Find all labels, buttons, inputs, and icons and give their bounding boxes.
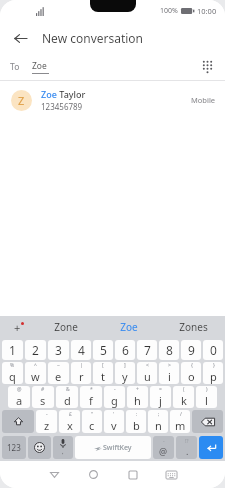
- button[interactable]: 8: [159, 340, 179, 360]
- staticText: f: [89, 393, 93, 408]
- button[interactable]: @: [8, 386, 30, 408]
- button[interactable]: :: [126, 410, 146, 433]
- staticText: y: [122, 369, 128, 384]
- staticText: t: [101, 369, 105, 384]
- staticText: -: [163, 438, 165, 445]
- button[interactable]: Zone: [34, 316, 97, 338]
- button[interactable]: Hide keyboard: [152, 461, 191, 488]
- button[interactable]: More options: [0, 316, 34, 338]
- staticText: 100%: [160, 6, 178, 16]
- button[interactable]: ]: [115, 362, 135, 384]
- button[interactable]: Back: [8, 26, 32, 50]
- staticText: b: [133, 418, 140, 433]
- button[interactable]: To: [0, 54, 225, 80]
- staticText: i: [168, 369, 171, 384]
- button[interactable]: Home: [74, 461, 113, 488]
- button[interactable]: 3: [48, 340, 69, 360]
- staticText: To: [10, 61, 20, 73]
- staticText: v: [111, 418, 117, 433]
- staticText: ^: [34, 362, 37, 369]
- staticText: {: [191, 362, 193, 369]
- staticText: z: [44, 418, 50, 433]
- button[interactable]: Recent apps: [113, 461, 152, 488]
- button[interactable]: ~: [48, 362, 69, 384]
- button[interactable]: ;: [148, 410, 168, 433]
- button[interactable]: Z: [0, 81, 225, 119]
- button[interactable]: 0: [203, 340, 223, 360]
- staticText: s: [40, 393, 46, 408]
- staticText: p: [210, 369, 217, 384]
- button[interactable]: 1: [2, 340, 23, 360]
- button[interactable]: -: [104, 386, 125, 408]
- staticText: Zoe: [120, 320, 138, 334]
- button[interactable]: Numbers: [2, 436, 26, 459]
- button[interactable]: (: [173, 386, 194, 408]
- staticText: Zoe: [32, 60, 47, 72]
- staticText: u: [144, 369, 151, 384]
- button[interactable]: #: [32, 386, 54, 408]
- staticText: 123456789: [41, 101, 83, 112]
- staticText: &: [66, 386, 70, 393]
- button[interactable]: Back: [35, 461, 74, 488]
- button[interactable]: 6: [115, 340, 135, 360]
- button[interactable]: /: [170, 410, 190, 433]
- staticText: *: [90, 386, 93, 393]
- button[interactable]: -: [36, 410, 57, 433]
- staticText: Mobile: [191, 95, 216, 105]
- staticText: 5: [100, 342, 107, 358]
- staticText: 9: [188, 342, 195, 358]
- button[interactable]: *: [80, 386, 102, 408]
- staticText: [: [102, 362, 104, 369]
- staticText: .: [186, 445, 189, 457]
- button[interactable]: {: [181, 362, 201, 384]
- staticText: Zone: [54, 320, 78, 334]
- staticText: ): [206, 386, 208, 393]
- button[interactable]: &: [56, 386, 78, 408]
- button[interactable]: !?: [176, 436, 197, 459]
- button[interactable]: >: [159, 362, 179, 384]
- button[interactable]: =: [150, 386, 171, 408]
- button[interactable]: 4: [71, 340, 91, 360]
- button[interactable]: £: [59, 410, 80, 433]
- staticText: :: [136, 411, 138, 418]
- button[interactable]: Dial pad: [195, 55, 219, 79]
- staticText: g: [111, 393, 118, 408]
- button[interactable]: ': [104, 410, 124, 433]
- staticText: ": [91, 411, 94, 418]
- button[interactable]: <: [137, 362, 157, 384]
- button[interactable]: }: [203, 362, 223, 384]
- staticText: e: [55, 369, 62, 384]
- button[interactable]: Voice input: [53, 436, 73, 459]
- button[interactable]: ): [196, 386, 217, 408]
- button[interactable]: 5: [93, 340, 113, 360]
- button[interactable]: +: [127, 386, 148, 408]
- staticText: x: [67, 418, 73, 433]
- staticText: 6: [122, 342, 129, 358]
- staticText: o: [188, 369, 195, 384]
- button[interactable]: [: [93, 362, 113, 384]
- button[interactable]: Backspace: [192, 410, 223, 433]
- staticText: %: [10, 362, 15, 369]
- button[interactable]: Emoji: [28, 436, 51, 459]
- button[interactable]: 9: [181, 340, 201, 360]
- button[interactable]: ": [82, 410, 102, 433]
- staticText: 3: [55, 342, 62, 358]
- staticText: ~: [57, 362, 60, 369]
- button[interactable]: 2: [25, 340, 46, 360]
- staticText: d: [64, 393, 71, 408]
- button[interactable]: Space: [75, 436, 151, 459]
- button[interactable]: ^: [25, 362, 46, 384]
- staticText: Zoe: [41, 88, 57, 100]
- button[interactable]: Zones: [161, 316, 225, 338]
- staticText: @: [17, 386, 22, 393]
- button[interactable]: Shift: [2, 410, 34, 433]
- button[interactable]: |: [71, 362, 91, 384]
- staticText: New conversation: [42, 30, 144, 46]
- button[interactable]: Enter: [199, 436, 223, 459]
- button[interactable]: -: [153, 436, 174, 459]
- button[interactable]: %: [2, 362, 23, 384]
- button[interactable]: Zoe: [97, 316, 161, 338]
- staticText: h: [134, 393, 141, 408]
- button[interactable]: 7: [137, 340, 157, 360]
- staticText: Z: [18, 93, 25, 108]
